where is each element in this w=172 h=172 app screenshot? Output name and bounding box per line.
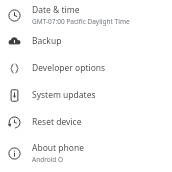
staticText: Date & time bbox=[32, 4, 80, 16]
button[interactable]: Developer options bbox=[0, 57, 172, 79]
staticText: Backup bbox=[32, 35, 62, 47]
staticText: Android O bbox=[32, 155, 64, 164]
staticText: GMT-07:00 Pacific Daylight Time bbox=[32, 17, 130, 26]
button[interactable]: Backup bbox=[0, 30, 172, 52]
other: Backup bbox=[8, 35, 21, 48]
other: About phone bbox=[8, 147, 21, 160]
staticText: System updates bbox=[32, 89, 96, 101]
other: Developer options bbox=[8, 62, 21, 75]
staticText: About phone bbox=[32, 142, 85, 154]
staticText: Developer options bbox=[32, 62, 106, 74]
button[interactable]: Reset device bbox=[0, 111, 172, 133]
other: Date and time bbox=[8, 9, 21, 22]
other: Reset device bbox=[8, 116, 21, 129]
staticText: Reset device bbox=[32, 116, 82, 128]
button[interactable]: Date and time bbox=[0, 3, 172, 27]
other: System updates bbox=[8, 89, 21, 102]
button[interactable]: System updates bbox=[0, 84, 172, 106]
button[interactable]: About phone bbox=[0, 141, 172, 165]
